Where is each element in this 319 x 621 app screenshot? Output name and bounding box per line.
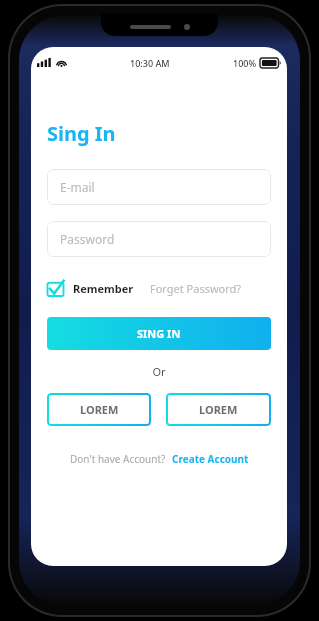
staticText: 10:30 AM: [130, 57, 170, 69]
staticText: Password: [60, 231, 115, 247]
staticText: Or: [47, 364, 271, 379]
button[interactable]: E-mail: [47, 169, 271, 205]
button[interactable]: Remember: [47, 280, 134, 297]
staticText: SING IN: [137, 326, 181, 341]
staticText: Remember: [73, 281, 134, 296]
staticText: LOREM: [199, 402, 238, 417]
staticText: LOREM: [80, 402, 119, 417]
button[interactable]: SING IN: [47, 317, 271, 350]
staticText: Forget Password?: [150, 281, 242, 296]
button[interactable]: Password: [47, 221, 271, 257]
button[interactable]: LOREM: [166, 393, 271, 426]
staticText: E-mail: [60, 179, 95, 195]
button[interactable]: Create Account: [172, 452, 249, 466]
button[interactable]: LOREM: [47, 393, 151, 426]
button[interactable]: Forget Password?: [150, 281, 242, 296]
staticText: Sing In: [47, 120, 116, 147]
staticText: Don't have Account?: [70, 452, 166, 466]
staticText: Create Account: [172, 452, 249, 466]
staticText: 100%: [233, 57, 257, 69]
